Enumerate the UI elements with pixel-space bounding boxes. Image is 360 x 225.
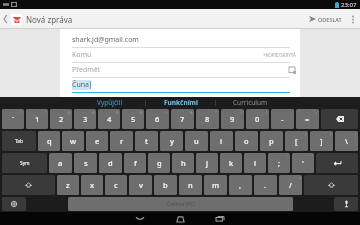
- button[interactable]: Sym: [2, 153, 47, 173]
- button[interactable]: w: [62, 131, 84, 151]
- staticText: 23:07: [341, 1, 357, 9]
- button[interactable]: ,: [229, 175, 252, 195]
- button[interactable]: Shift: [2, 175, 55, 195]
- button[interactable]: 6: [146, 109, 169, 129]
- button[interactable]: v: [129, 175, 152, 195]
- staticText: shark.jd@gmail.com: [72, 35, 296, 45]
- button[interactable]: Change language: [2, 197, 26, 211]
- staticText: $: [116, 110, 119, 115]
- button[interactable]: 9: [221, 109, 244, 129]
- button[interactable]: Home: [160, 212, 200, 225]
- button[interactable]: Vypůjčili: [75, 97, 145, 108]
- button[interactable]: j: [196, 153, 218, 173]
- staticText: ODESLAT: [318, 16, 342, 23]
- button[interactable]: x: [81, 175, 103, 195]
- other: Back: [3, 15, 8, 23]
- button[interactable]: 7: [171, 109, 194, 129]
- button[interactable]: e: [86, 131, 108, 151]
- button[interactable]: Čuna: [60, 78, 300, 92]
- staticText: Tab: [15, 138, 23, 145]
- staticText: g: [157, 158, 162, 168]
- button[interactable]: [: [285, 131, 308, 151]
- button[interactable]: u: [185, 131, 208, 151]
- button[interactable]: p: [260, 131, 283, 151]
- button[interactable]: l: [244, 153, 266, 173]
- button[interactable]: s: [74, 153, 97, 173]
- staticText: 3: [83, 114, 88, 124]
- staticText: Nová zpráva: [26, 14, 73, 25]
- staticText: Čuna: [72, 80, 90, 90]
- staticText: k: [229, 158, 234, 168]
- button[interactable]: shark.jd@gmail.com: [60, 33, 300, 47]
- button[interactable]: ;: [268, 153, 290, 173]
- staticText: ): [266, 110, 268, 115]
- button[interactable]: 3: [74, 109, 96, 129]
- button[interactable]: Tab: [2, 131, 36, 151]
- staticText: p: [269, 136, 274, 146]
- button[interactable]: a: [49, 153, 72, 173]
- button[interactable]: `: [2, 109, 24, 129]
- staticText: *: [215, 110, 218, 115]
- button[interactable]: /: [279, 175, 302, 195]
- staticText: @: [67, 110, 71, 115]
- button[interactable]: Back: [0, 9, 79, 29]
- button[interactable]: o: [235, 131, 258, 151]
- button[interactable]: Shift: [304, 175, 358, 195]
- button[interactable]: n: [179, 175, 202, 195]
- button[interactable]: r: [110, 131, 133, 151]
- staticText: q: [47, 136, 52, 146]
- button[interactable]: 2: [50, 109, 72, 129]
- button[interactable]: 1: [26, 109, 48, 129]
- button[interactable]: f: [124, 153, 146, 173]
- button[interactable]: q: [38, 131, 60, 151]
- staticText: u: [194, 136, 199, 146]
- button[interactable]: =: [296, 109, 319, 129]
- button[interactable]: Funkčními: [146, 97, 215, 108]
- staticText: Komu: [72, 50, 263, 60]
- staticText: y: [170, 136, 174, 146]
- button[interactable]: ]: [310, 131, 333, 151]
- button[interactable]: y: [160, 131, 183, 151]
- button[interactable]: ODESLAT: [305, 9, 346, 29]
- button[interactable]: d: [99, 153, 122, 173]
- staticText: \: [345, 136, 348, 146]
- button[interactable]: m: [204, 175, 227, 195]
- button[interactable]: -: [271, 109, 294, 129]
- button[interactable]: t: [135, 131, 158, 151]
- staticText: 6: [155, 114, 160, 124]
- staticText: j: [206, 158, 209, 168]
- staticText: =: [305, 114, 310, 124]
- button[interactable]: Backspace: [321, 109, 358, 129]
- button[interactable]: 0: [246, 109, 269, 129]
- button[interactable]: i: [210, 131, 233, 151]
- staticText: Sym: [20, 160, 30, 167]
- staticText: e: [95, 136, 100, 146]
- staticText: o: [244, 136, 249, 146]
- staticText: l: [254, 158, 257, 168]
- button[interactable]: 8: [196, 109, 219, 129]
- staticText: 7: [180, 114, 185, 124]
- button[interactable]: .: [254, 175, 277, 195]
- button[interactable]: k: [220, 153, 242, 173]
- button[interactable]: More options: [346, 9, 360, 29]
- button[interactable]: Recent apps: [200, 212, 240, 225]
- button[interactable]: g: [148, 153, 170, 173]
- button[interactable]: 5: [122, 109, 144, 129]
- button[interactable]: h: [172, 153, 194, 173]
- button[interactable]: Hide keyboard: [120, 212, 160, 225]
- button[interactable]: Komu: [60, 48, 300, 62]
- button[interactable]: 4: [98, 109, 120, 129]
- button[interactable]: z: [57, 175, 79, 195]
- button[interactable]: b: [154, 175, 177, 195]
- button[interactable]: c: [105, 175, 127, 195]
- button[interactable]: ': [292, 153, 314, 173]
- staticText: [: [295, 136, 298, 146]
- button[interactable]: Curriculum: [216, 97, 285, 108]
- staticText: 4: [107, 114, 112, 124]
- button[interactable]: \: [335, 131, 358, 151]
- button[interactable]: Předmět: [60, 63, 300, 77]
- button[interactable]: Voice input: [334, 197, 358, 211]
- staticText: !: [45, 110, 47, 115]
- button[interactable]: Enter: [316, 153, 358, 173]
